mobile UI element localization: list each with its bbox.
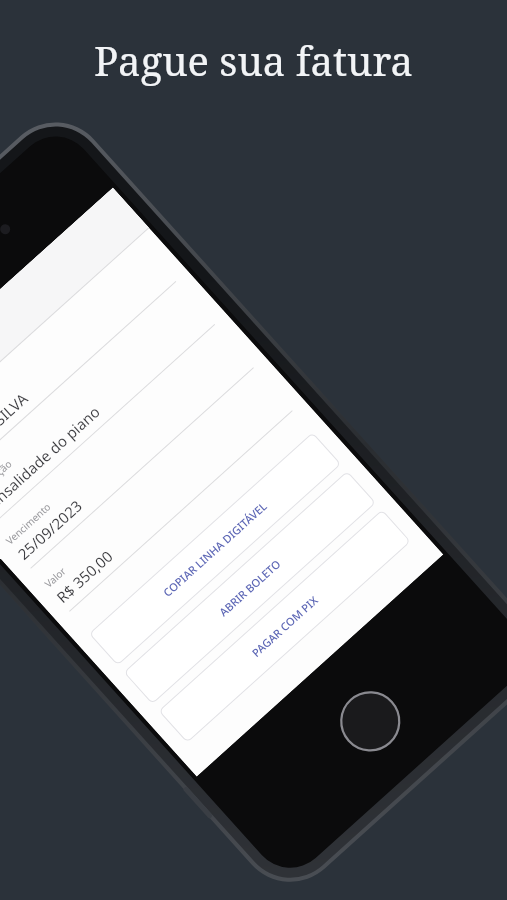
button[interactable]: Pague sua fatura (0, 0, 507, 900)
